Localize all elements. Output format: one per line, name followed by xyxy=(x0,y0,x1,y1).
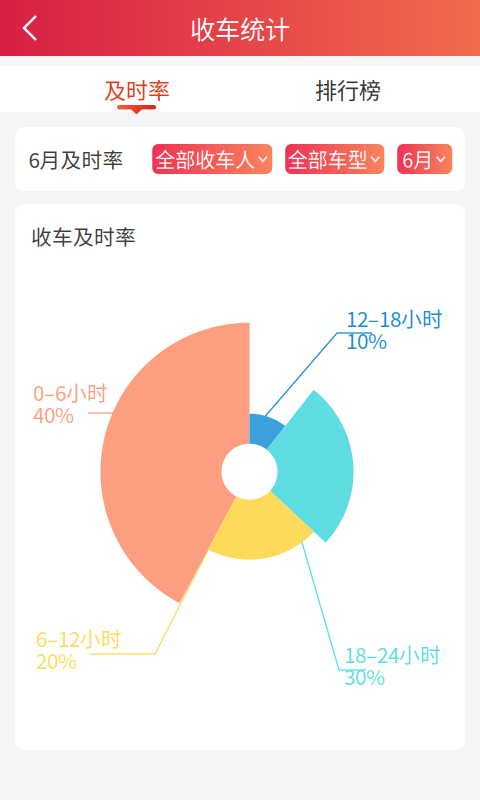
button[interactable]: 及时率 xyxy=(62,66,212,112)
staticText: 收车及时率 xyxy=(31,221,136,251)
staticText: 10% xyxy=(346,325,387,355)
staticText: 0–6小时 xyxy=(33,377,108,407)
staticText: 排行榜 xyxy=(315,73,381,105)
staticText: 及时率 xyxy=(104,73,170,105)
staticText: 6月及时率 xyxy=(28,144,123,174)
staticText: 6–12小时 xyxy=(36,623,122,653)
staticText: 12–18小时 xyxy=(346,303,443,333)
staticText: 全部收车人 xyxy=(155,144,255,173)
button[interactable]: 全部收车人 xyxy=(152,144,272,174)
button[interactable]: 全部车型 xyxy=(285,144,384,174)
staticText: 全部车型 xyxy=(288,144,368,173)
staticText: 18–24小时 xyxy=(344,639,441,669)
staticText: 6月 xyxy=(402,144,433,173)
staticText: 40% xyxy=(33,399,74,429)
staticText: 30% xyxy=(344,661,385,691)
button[interactable]: 6月 xyxy=(397,144,452,174)
button[interactable]: Back xyxy=(12,6,48,50)
staticText: 20% xyxy=(36,645,77,675)
staticText: 收车统计 xyxy=(190,10,290,46)
button[interactable]: 排行榜 xyxy=(273,66,423,112)
